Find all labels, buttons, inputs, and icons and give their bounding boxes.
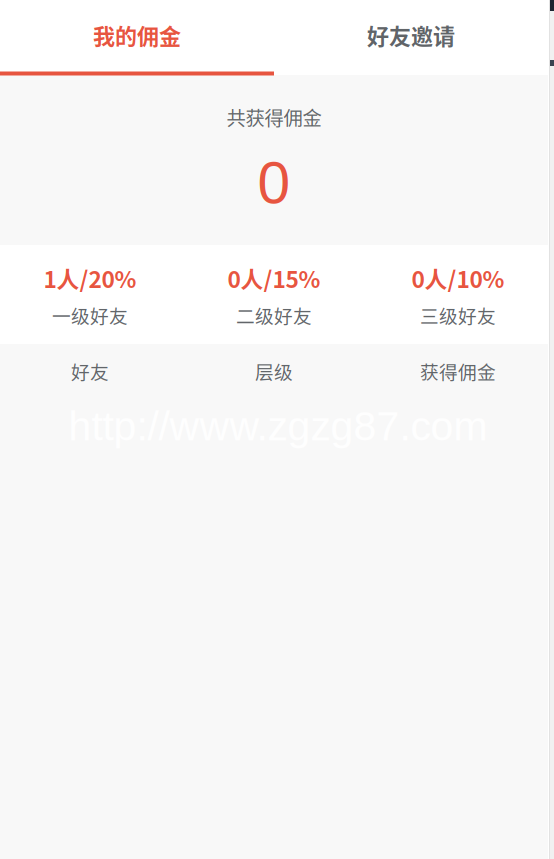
staticText: 0人/15% [227, 262, 320, 294]
staticText: 层级 [255, 357, 293, 384]
button[interactable]: 好友邀请 [274, 0, 548, 72]
staticText: 获得佣金 [420, 357, 496, 384]
button[interactable]: 我的佣金 [0, 0, 274, 72]
staticText: 三级好友 [420, 301, 496, 328]
staticText: 1人/20% [43, 262, 136, 294]
staticText: 好友 [71, 357, 109, 384]
staticText: 我的佣金 [93, 19, 181, 51]
staticText: 共获得佣金 [226, 103, 321, 131]
staticText: 一级好友 [52, 301, 128, 328]
staticText: 好友邀请 [367, 19, 455, 51]
staticText: 0 [257, 150, 290, 216]
staticText: 二级好友 [236, 301, 312, 328]
staticText: 0人/10% [411, 262, 504, 294]
